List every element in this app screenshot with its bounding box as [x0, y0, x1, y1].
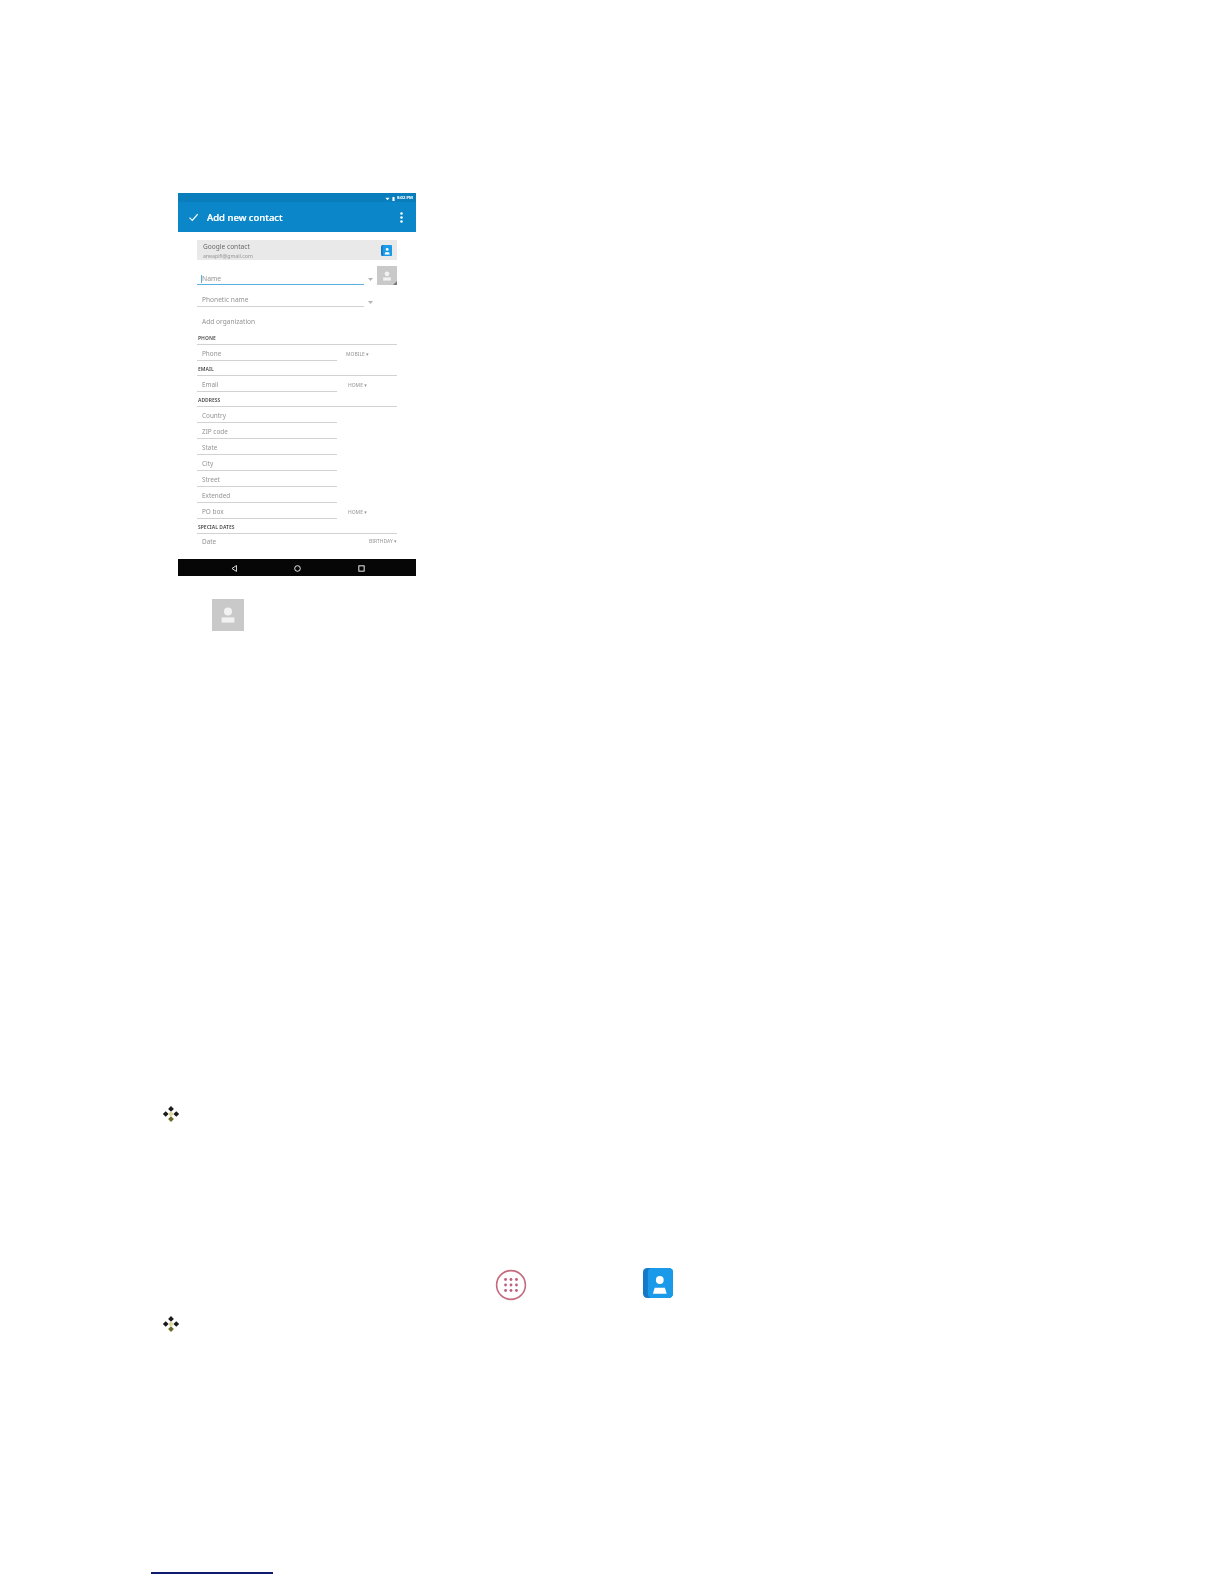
other: All apps [495, 1269, 527, 1301]
staticText: PO box [202, 507, 224, 516]
staticText: EMAIL [198, 366, 214, 373]
button[interactable]: City [197, 457, 397, 473]
button[interactable]: PO box [197, 505, 397, 521]
other: Contact placeholder photo [212, 599, 244, 631]
staticText: Google contact [203, 242, 250, 251]
staticText: Email [202, 380, 219, 389]
staticText: Extended [202, 491, 231, 500]
button[interactable]: Name [197, 272, 364, 284]
button[interactable]: Google contact [197, 240, 397, 260]
button[interactable]: Add organization [197, 316, 397, 327]
button[interactable]: Country [197, 409, 397, 425]
button[interactable]: Expand name fields [367, 273, 374, 285]
button[interactable]: ZIP code [197, 425, 397, 441]
staticText: Name [202, 274, 222, 283]
staticText: ZIP code [202, 427, 228, 436]
staticText: HOME ▾ [348, 382, 367, 389]
staticText: Add new contact [207, 211, 283, 224]
staticText: PHONE [198, 335, 216, 342]
staticText: ADDRESS [198, 397, 221, 404]
staticText: Add organization [202, 317, 256, 326]
button[interactable]: Phonetic name [197, 295, 364, 307]
button[interactable]: Recent apps [353, 560, 369, 576]
button[interactable]: Street [197, 473, 397, 489]
staticText: Date [202, 537, 217, 546]
staticText: MOBILE ▾ [346, 351, 369, 358]
button[interactable]: Save contact [185, 209, 201, 225]
staticText: 8:02 PM [397, 195, 413, 201]
button[interactable]: More options [393, 209, 409, 225]
staticText: Phonetic name [202, 295, 249, 304]
staticText: HOME ▾ [348, 509, 367, 516]
button[interactable]: Expand phonetic name [367, 297, 374, 307]
staticText: BIRTHDAY ▾ [369, 538, 397, 545]
staticText: State [202, 443, 218, 452]
button[interactable]: Back [226, 560, 242, 576]
staticText: SPECIAL DATES [198, 524, 235, 531]
staticText: aneapifi@gmail.com [203, 252, 253, 259]
button[interactable]: Extended [197, 489, 397, 505]
other: Contacts app [643, 1268, 673, 1298]
button[interactable]: Home [289, 560, 305, 576]
staticText: Street [202, 475, 220, 484]
button[interactable]: Add contact photo [377, 266, 397, 285]
button[interactable]: Email [197, 378, 397, 394]
button[interactable]: State [197, 441, 397, 457]
staticText: Phone [202, 349, 222, 358]
staticText: City [202, 459, 214, 468]
button[interactable]: Phone [197, 347, 397, 363]
staticText: Country [202, 411, 227, 420]
